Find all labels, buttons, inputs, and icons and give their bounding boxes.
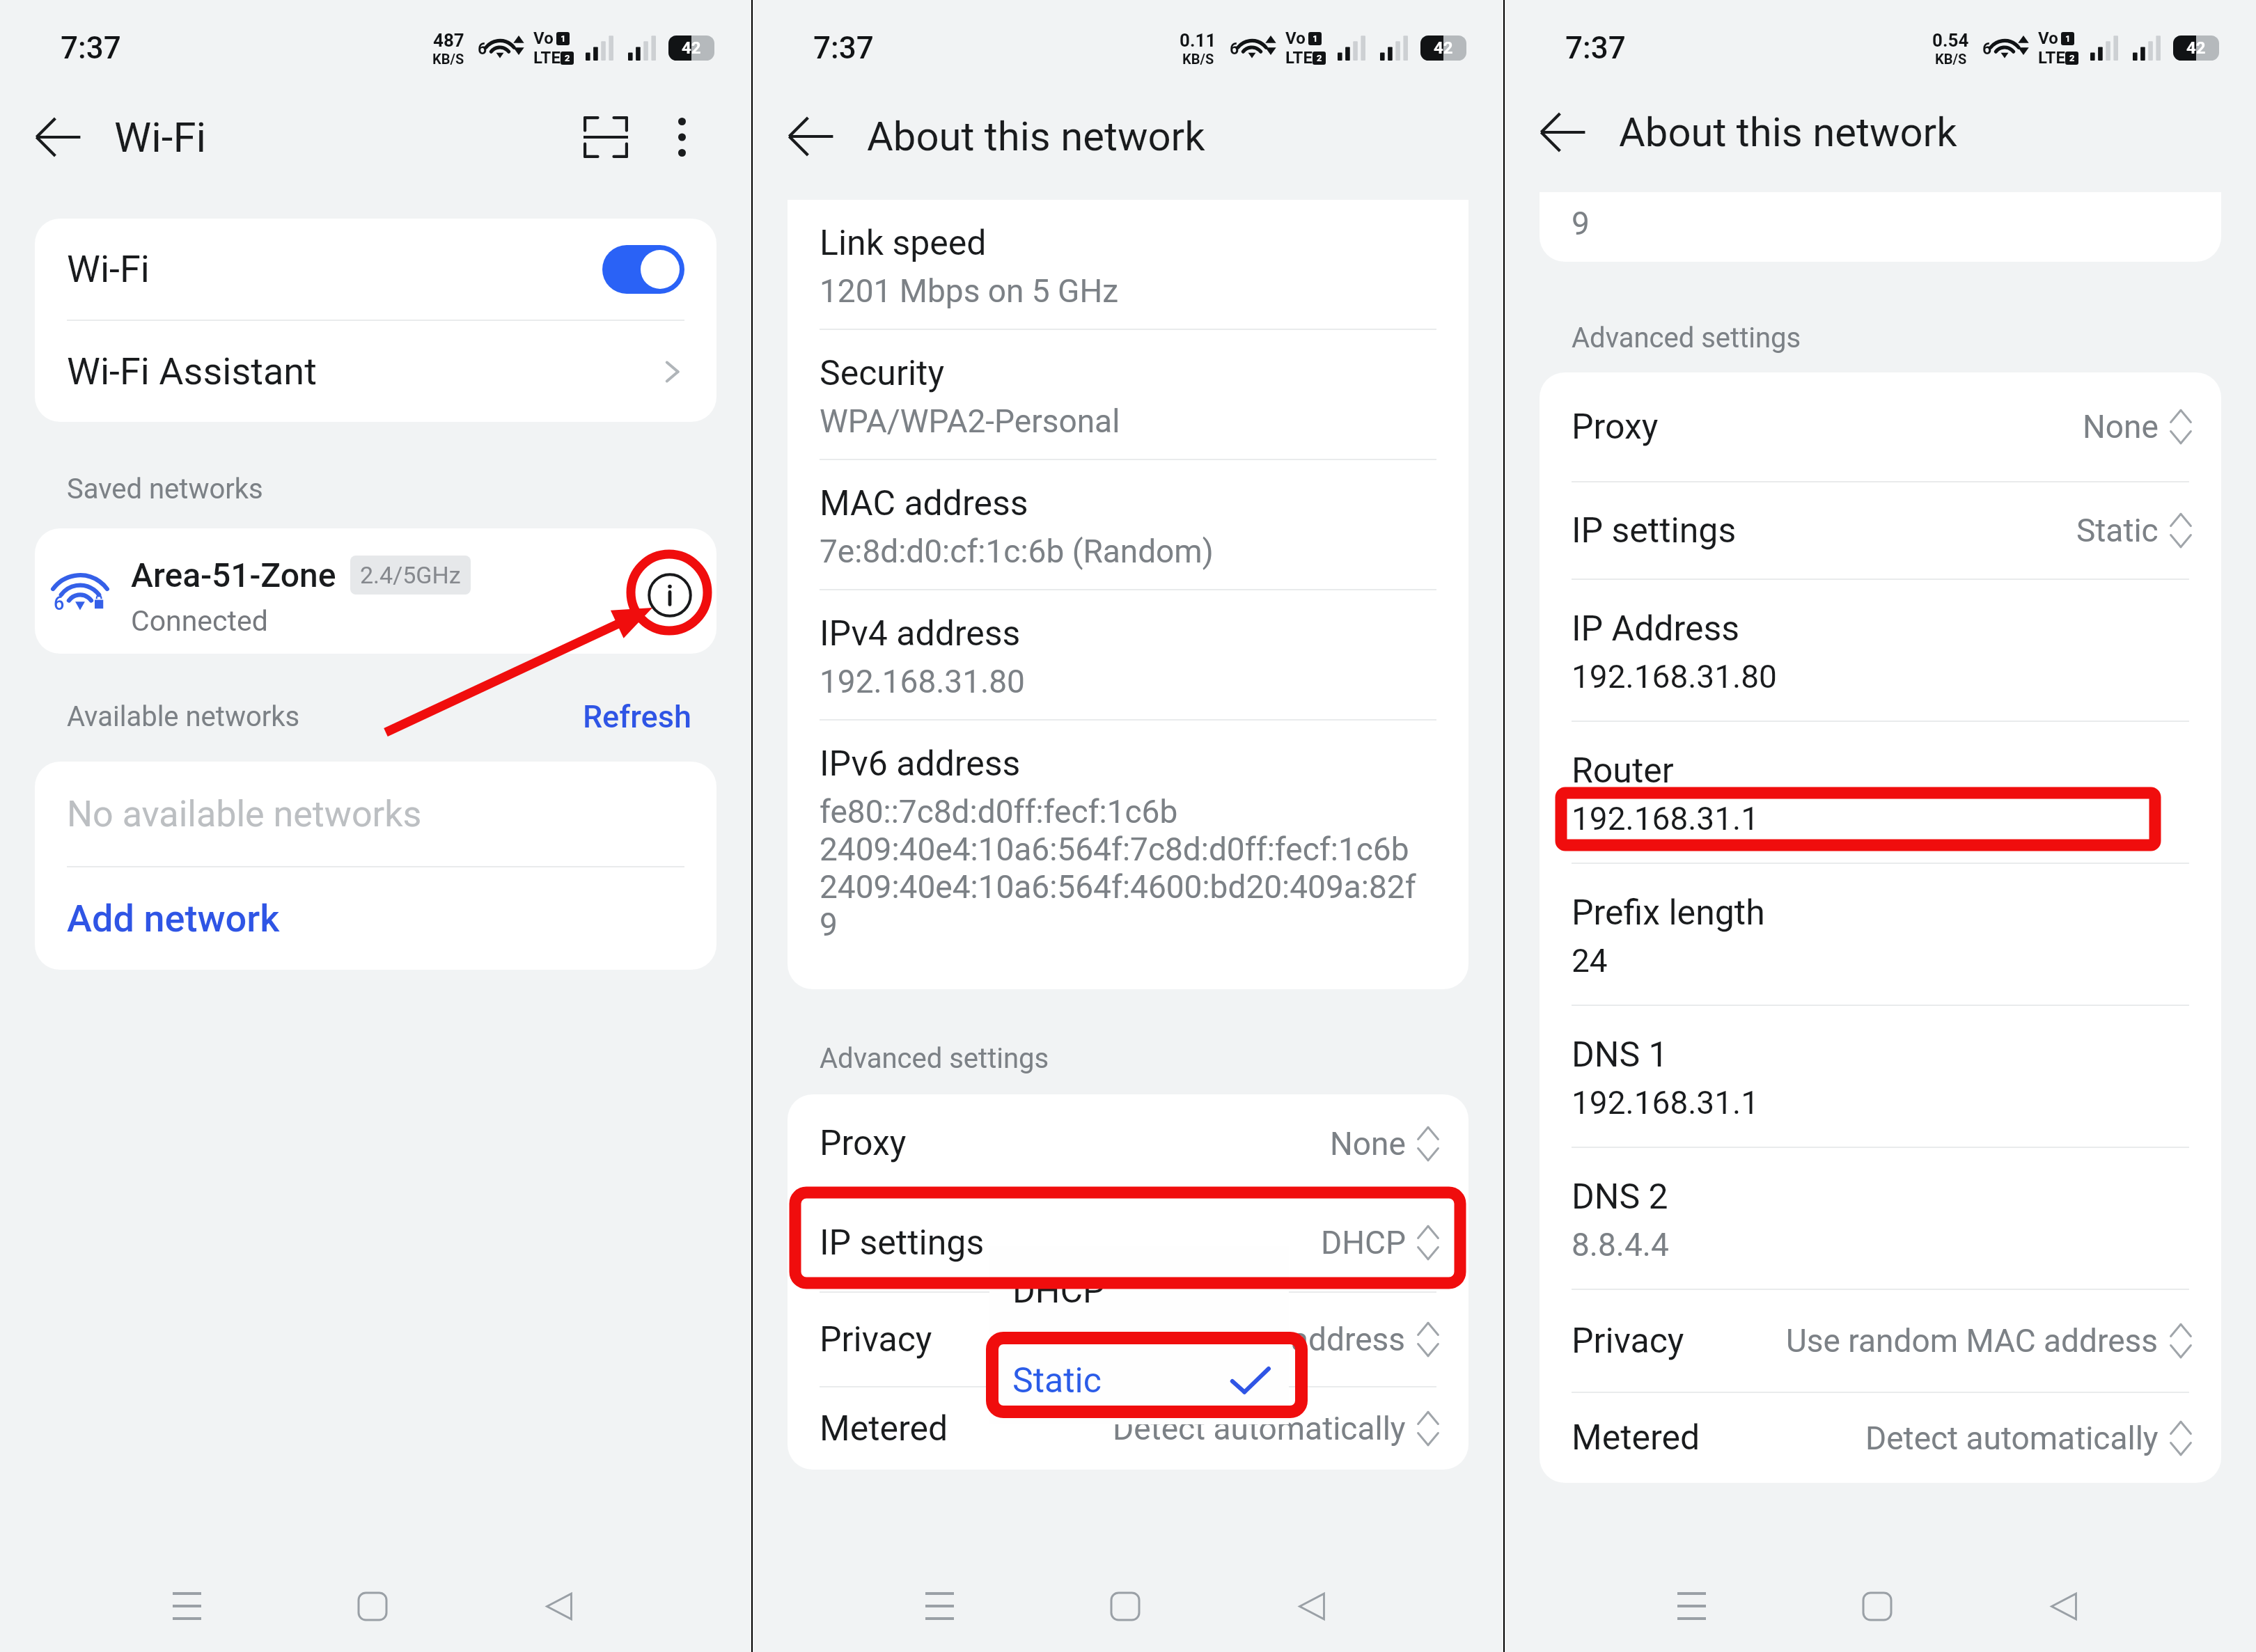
button[interactable]: Add network <box>35 867 716 970</box>
button[interactable]: Back <box>496 1561 622 1651</box>
staticText: IP Address <box>1572 608 1740 650</box>
button[interactable]: Home <box>310 1561 435 1651</box>
staticText: 9 <box>1572 205 1590 242</box>
button[interactable]: Proxy <box>1540 372 2221 481</box>
button[interactable]: Privacy <box>1540 1290 2221 1392</box>
staticText: 7:37 <box>61 30 121 66</box>
button[interactable]: DHCP <box>989 1246 1289 1335</box>
button[interactable]: Wi-Fi Assistant <box>35 321 716 422</box>
button[interactable]: Back <box>778 104 843 169</box>
staticText: 2 <box>1317 53 1322 63</box>
staticText: DHCP <box>1012 1271 1105 1312</box>
staticText: KB/S <box>1935 51 1967 67</box>
staticText: LTE <box>533 48 561 68</box>
staticText: LTE <box>2038 48 2065 68</box>
staticText: Detect automatically <box>1865 1419 2159 1457</box>
staticText: Privacy <box>1572 1321 1684 1362</box>
staticText: 42 <box>2186 38 2206 58</box>
staticText: Use random MAC address <box>1033 1321 1406 1358</box>
staticText: 6 <box>1230 40 1239 58</box>
staticText: 24 <box>1572 942 1608 980</box>
button[interactable]: Metered <box>788 1387 1468 1470</box>
staticText: 487 <box>433 30 464 51</box>
button[interactable]: Back <box>2001 1561 2126 1651</box>
staticText: fe80::7c8d:d0ff:fecf:1c6b <box>820 793 1178 831</box>
button[interactable]: IP settings <box>788 1194 1468 1291</box>
button[interactable]: 6 <box>35 528 716 654</box>
button[interactable]: Proxy <box>788 1094 1468 1193</box>
staticText: Vo <box>2038 29 2058 48</box>
staticText: Link speed <box>820 223 987 264</box>
button[interactable]: Privacy <box>788 1293 1468 1386</box>
button[interactable]: Static <box>989 1337 1289 1424</box>
staticText: 9 <box>820 906 838 943</box>
staticText: Wi-Fi <box>67 247 150 291</box>
button[interactable]: Back <box>1249 1561 1374 1651</box>
staticText: Proxy <box>1572 407 1659 448</box>
staticText: DNS 2 <box>1572 1177 1668 1218</box>
staticText: Privacy <box>820 1319 932 1360</box>
staticText: 7:37 <box>1565 30 1626 66</box>
staticText: 1201 Mbps on 5 GHz <box>820 272 1119 310</box>
staticText: Metered <box>1572 1417 1700 1458</box>
staticText: 2.4/5GHz <box>360 561 461 589</box>
staticText: 192.168.31.1 <box>1572 1084 1760 1122</box>
button[interactable]: Back <box>25 104 91 170</box>
staticText: Advanced settings <box>820 1042 1049 1075</box>
staticText: 7:37 <box>813 30 874 66</box>
button[interactable]: Network details <box>641 566 699 624</box>
staticText: Static <box>1012 1360 1102 1401</box>
staticText: Available networks <box>67 700 300 733</box>
staticText: KB/S <box>1182 51 1214 67</box>
staticText: IP settings <box>820 1222 985 1264</box>
button[interactable]: Recents <box>877 1561 1002 1651</box>
staticText: 2 <box>2069 53 2075 63</box>
staticText: 2409:40e4:10a6:564f:7c8d:d0ff:fecf:1c6b <box>820 831 1409 868</box>
staticText: Static <box>2076 512 2159 549</box>
staticText: Metered <box>820 1408 948 1449</box>
staticText: 1 <box>561 33 566 44</box>
button[interactable]: Metered <box>1540 1393 2221 1483</box>
staticText: 42 <box>1434 38 1453 58</box>
staticText: Prefix length <box>1572 892 1765 934</box>
staticText: Wi-Fi Assistant <box>67 349 317 393</box>
staticText: 2409:40e4:10a6:564f:4600:bd20:409a:82f <box>820 868 1416 906</box>
staticText: Area-51-Zone <box>131 556 336 595</box>
staticText: DHCP <box>1321 1224 1406 1261</box>
button[interactable]: Wi-Fi <box>35 219 716 320</box>
button[interactable]: Back <box>1530 100 1595 165</box>
button[interactable]: Refresh <box>583 698 691 735</box>
staticText: Use random MAC address <box>1786 1322 2159 1360</box>
staticText: 42 <box>682 38 701 58</box>
button[interactable]: Home <box>1063 1561 1188 1651</box>
staticText: KB/S <box>432 51 464 67</box>
button[interactable]: Scan QR code <box>571 102 641 172</box>
button[interactable]: IP settings <box>1540 482 2221 579</box>
staticText: About this network <box>1619 109 1957 156</box>
staticText: 8.8.4.4 <box>1572 1226 1669 1264</box>
staticText: 6 <box>478 40 487 58</box>
staticText: IP settings <box>1572 510 1737 551</box>
staticText: None <box>1330 1125 1406 1163</box>
staticText: DNS 1 <box>1572 1035 1668 1076</box>
staticText: No available networks <box>67 793 422 835</box>
staticText: LTE <box>1285 48 1313 68</box>
button[interactable]: Home <box>1815 1561 1940 1651</box>
staticText: 6 <box>54 592 65 615</box>
staticText: Proxy <box>820 1123 907 1164</box>
staticText: WPA/WPA2-Personal <box>820 402 1120 440</box>
staticText: 0.54 <box>1932 30 1969 51</box>
button[interactable]: Recents <box>1629 1561 1754 1651</box>
staticText: IPv6 address <box>820 744 1021 785</box>
button[interactable]: More options <box>650 106 713 168</box>
staticText: 1 <box>2065 33 2071 44</box>
staticText: 1 <box>1313 33 1318 44</box>
staticText: Add network <box>67 897 280 941</box>
button[interactable]: Recents <box>124 1561 249 1651</box>
staticText: Vo <box>1285 29 1306 48</box>
staticText: 6 <box>1982 40 1992 58</box>
staticText: Security <box>820 353 945 394</box>
staticText: IPv4 address <box>820 613 1021 654</box>
staticText: 192.168.31.1 <box>1572 800 1760 837</box>
staticText: 0.11 <box>1180 30 1216 51</box>
